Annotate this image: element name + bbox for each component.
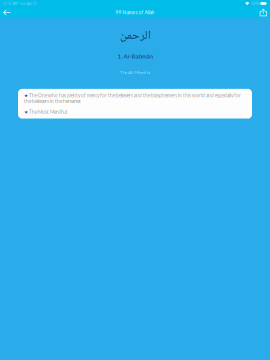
staticText: الرحمن <box>119 26 150 46</box>
button[interactable]: Share <box>250 6 267 18</box>
button[interactable]: Back <box>3 6 20 18</box>
staticText: 99 Names of Allah <box>115 10 154 15</box>
staticText: 100% <box>251 2 259 5</box>
staticText: ★ The Most Merciful <box>24 109 67 115</box>
staticText: The All-Merciful <box>120 69 150 75</box>
staticText: ★ The One who has plenty of mercy for th… <box>24 93 241 104</box>
staticText: 1. Ar-Raḥmān <box>117 52 152 60</box>
staticText: 11:57 AM Sun Apr 21 <box>3 2 37 5</box>
